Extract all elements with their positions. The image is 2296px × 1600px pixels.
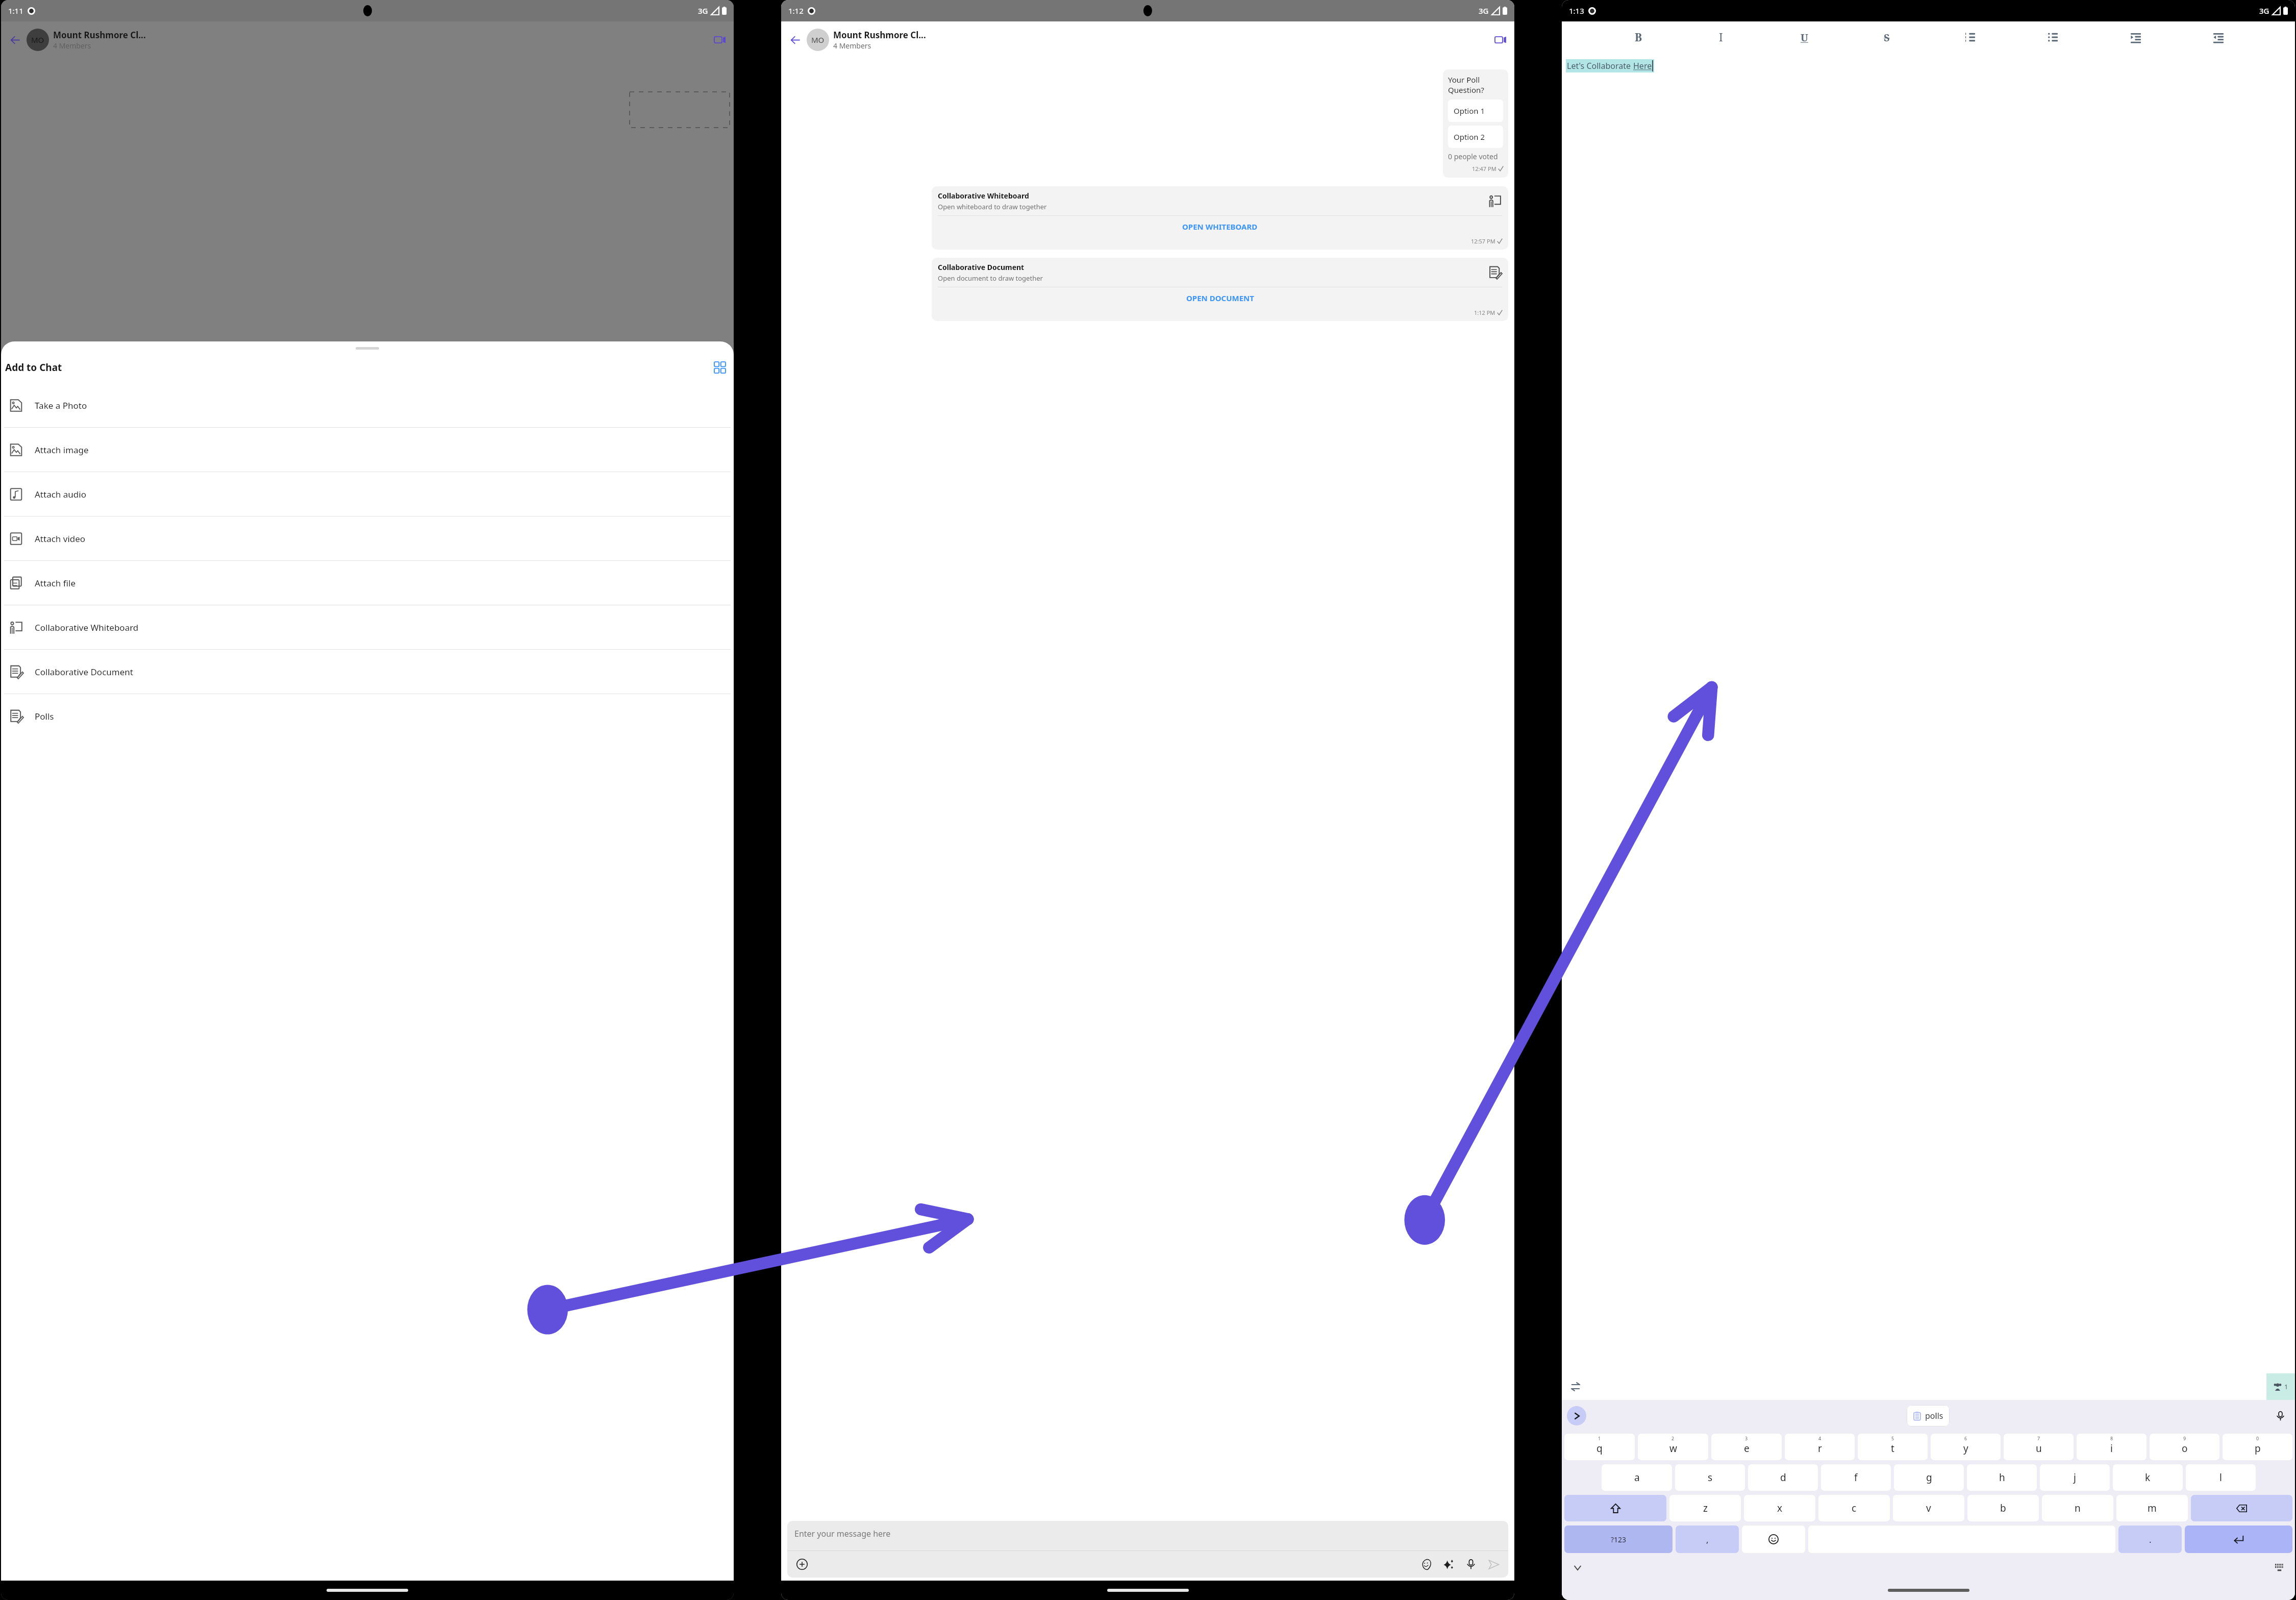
staticText: Polls <box>35 710 54 722</box>
button[interactable]: Back <box>6 31 23 48</box>
button[interactable]: Indent <box>2126 28 2145 47</box>
button[interactable]: Backspace <box>2191 1495 2292 1521</box>
button[interactable]: Attach image <box>1 428 734 472</box>
button[interactable]: AI <box>1440 1556 1457 1573</box>
button[interactable]: Bulleted list <box>2043 28 2062 47</box>
button[interactable]: 3 <box>1711 1434 1782 1460</box>
button[interactable]: d <box>1748 1464 1818 1491</box>
staticText: q <box>1596 1442 1603 1455</box>
button[interactable]: 5 <box>1858 1434 1928 1460</box>
button[interactable]: Video call <box>711 31 729 48</box>
button[interactable]: 9 <box>2150 1434 2219 1460</box>
button[interactable]: s <box>1675 1464 1745 1491</box>
button[interactable]: Enter <box>2185 1525 2292 1553</box>
button[interactable]: Sticker <box>1417 1556 1435 1573</box>
staticText: 1 <box>2284 1382 2288 1391</box>
button[interactable]: Attach video <box>1 516 734 560</box>
staticText: z <box>1703 1501 1708 1515</box>
staticText: 4 Members <box>833 41 871 51</box>
button[interactable]: v <box>1893 1495 1964 1521</box>
button[interactable]: Switch keyboard <box>2272 1560 2287 1576</box>
button[interactable]: 0 <box>2223 1434 2292 1460</box>
button[interactable]: Attach file <box>1 561 734 605</box>
button[interactable]: Take a Photo <box>1 383 734 427</box>
button[interactable]: z <box>1669 1495 1741 1521</box>
button[interactable]: Collaborative Whiteboard <box>932 186 1508 250</box>
button[interactable]: 2 <box>1638 1434 1708 1460</box>
button[interactable]: Expand <box>1567 1406 1586 1425</box>
button[interactable]: j <box>2040 1464 2110 1491</box>
button[interactable]: Polls <box>1 694 734 738</box>
staticText: OPEN WHITEBOARD <box>1182 221 1258 232</box>
staticText: 1:12 PM <box>1474 309 1495 316</box>
staticText: 4 Members <box>53 41 91 51</box>
button[interactable]: Attach audio <box>1 472 734 516</box>
button[interactable]: Sync <box>1568 1379 1583 1394</box>
staticText: s <box>1708 1471 1713 1484</box>
button[interactable]: c <box>1818 1495 1890 1521</box>
button[interactable]: Numbered list <box>1960 28 1980 47</box>
button[interactable]: Collaborative Whiteboard <box>1 605 734 649</box>
button[interactable]: Hide keyboard <box>1570 1560 1585 1576</box>
button[interactable]: Option 1 <box>1448 100 1503 122</box>
button[interactable]: Send <box>1485 1556 1502 1573</box>
button[interactable]: Period <box>2118 1525 2182 1553</box>
staticText: 4 <box>1818 1435 1821 1441</box>
button[interactable]: f <box>1821 1464 1891 1491</box>
button[interactable]: Video call <box>1492 31 1509 48</box>
staticText: 12:47 PM <box>1472 165 1496 173</box>
button[interactable]: x <box>1744 1495 1815 1521</box>
button[interactable]: Voice message <box>1462 1556 1480 1573</box>
button[interactable]: m <box>2116 1495 2188 1521</box>
staticText: Option 2 <box>1454 132 1485 142</box>
button[interactable]: k <box>2113 1464 2183 1491</box>
staticText: k <box>2145 1471 2151 1484</box>
button[interactable]: 8 <box>2077 1434 2147 1460</box>
button[interactable]: Your Poll Question? <box>1443 69 1508 178</box>
staticText: OPEN DOCUMENT <box>1186 293 1254 303</box>
button[interactable]: Collaborative Document <box>1 650 734 694</box>
button[interactable]: Grid view <box>710 358 730 377</box>
button[interactable]: n <box>2042 1495 2113 1521</box>
staticText: ?123 <box>1611 1535 1627 1544</box>
staticText: 1:11 <box>8 6 23 16</box>
button[interactable]: Back <box>786 31 804 48</box>
button[interactable]: Outdent <box>2209 28 2228 47</box>
button[interactable]: 1 <box>2266 1373 2295 1400</box>
button[interactable]: Add attachment <box>793 1556 811 1573</box>
button[interactable]: a <box>1602 1464 1672 1491</box>
staticText: Attach video <box>35 533 86 545</box>
button[interactable]: l <box>2186 1464 2256 1491</box>
button[interactable]: 6 <box>1931 1434 2001 1460</box>
button[interactable]: 4 <box>1785 1434 1855 1460</box>
button[interactable]: Voice input <box>2270 1406 2290 1425</box>
staticText: 3 <box>1745 1435 1748 1441</box>
button[interactable]: Bold <box>1629 28 1648 47</box>
button[interactable]: Italic <box>1711 28 1731 47</box>
button[interactable]: OPEN DOCUMENT <box>938 287 1502 309</box>
button[interactable]: Option 2 <box>1448 126 1503 148</box>
button[interactable]: polls <box>1907 1405 1950 1426</box>
staticText: f <box>1854 1471 1858 1484</box>
staticText: S <box>1884 31 1890 44</box>
button[interactable]: Enter your message here <box>787 1521 1508 1550</box>
staticText: 0 people voted <box>1448 152 1498 161</box>
button[interactable]: Comma <box>1676 1525 1739 1553</box>
button[interactable]: 7 <box>2004 1434 2074 1460</box>
staticText: Option 1 <box>1454 106 1485 116</box>
button[interactable]: Emoji <box>1742 1525 1805 1553</box>
button[interactable]: OPEN WHITEBOARD <box>938 216 1502 237</box>
button[interactable]: Collaborative Document <box>932 258 1508 321</box>
button[interactable]: Strikethrough <box>1877 28 1896 47</box>
button[interactable]: Shift <box>1564 1495 1666 1521</box>
staticText: Take a Photo <box>35 400 87 411</box>
staticText: Mount Rushmore Cl... <box>833 29 926 41</box>
button[interactable]: h <box>1967 1464 2037 1491</box>
button[interactable]: Symbols <box>1564 1525 1673 1553</box>
staticText: j <box>2074 1471 2076 1484</box>
button[interactable]: b <box>1967 1495 2039 1521</box>
button[interactable]: 1 <box>1564 1434 1635 1460</box>
button[interactable]: Underline <box>1794 28 1814 47</box>
button[interactable]: g <box>1894 1464 1964 1491</box>
